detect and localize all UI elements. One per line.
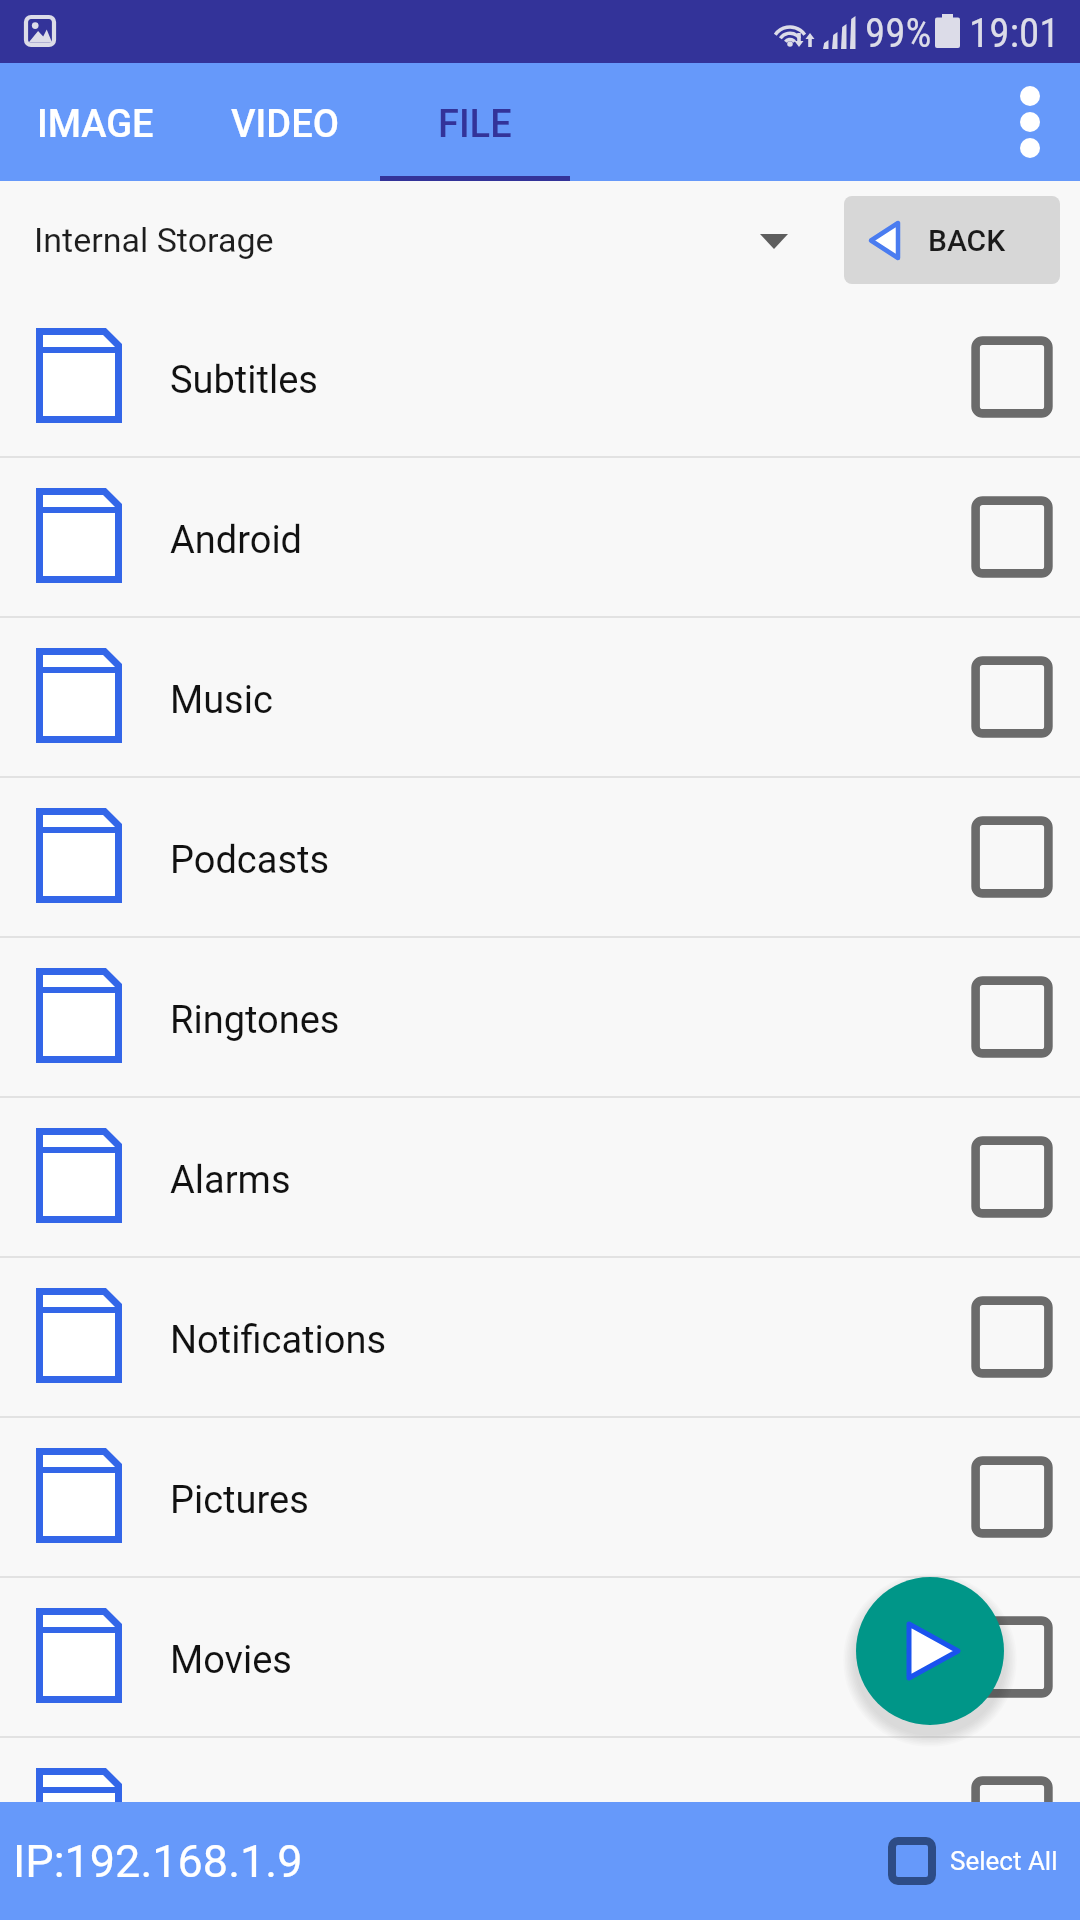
button[interactable]: Play <box>856 1577 1004 1725</box>
button[interactable]: Podcasts <box>0 778 1080 936</box>
staticText: Internal Storage <box>34 220 274 260</box>
button[interactable]: Subtitles <box>0 298 1080 456</box>
staticText: Music <box>170 678 273 723</box>
staticText: FILE <box>438 102 512 147</box>
staticText: IMAGE <box>37 102 154 147</box>
button[interactable]: Select Music <box>957 642 1067 752</box>
button[interactable]: Ringtones <box>0 938 1080 1096</box>
button[interactable]: Select Notifications <box>957 1282 1067 1392</box>
staticText: Android <box>170 518 303 563</box>
staticText: Download <box>170 1798 340 1843</box>
button[interactable]: Alarms <box>0 1098 1080 1256</box>
staticText: 99% <box>865 9 932 57</box>
button[interactable]: Select Download <box>957 1762 1067 1872</box>
button[interactable]: Internal Storage <box>0 181 1080 298</box>
button[interactable]: Android <box>0 458 1080 616</box>
staticText: Movies <box>170 1638 292 1683</box>
button[interactable]: VIDEO <box>190 63 380 181</box>
button[interactable]: More options <box>980 63 1080 181</box>
button[interactable]: Music <box>0 618 1080 776</box>
button[interactable]: Download <box>0 1738 1080 1896</box>
button[interactable]: Movies <box>0 1578 1080 1736</box>
staticText: Pictures <box>170 1478 309 1523</box>
staticText: Select All <box>950 1846 1058 1876</box>
button[interactable]: Select Ringtones <box>957 962 1067 1072</box>
button[interactable]: Select Pictures <box>957 1442 1067 1552</box>
button[interactable]: FILE <box>380 63 570 181</box>
staticText: Subtitles <box>170 358 318 403</box>
staticText: Notifications <box>170 1318 387 1363</box>
staticText: 19:01 <box>969 9 1060 57</box>
button[interactable]: IMAGE <box>0 63 190 181</box>
staticText: Ringtones <box>170 998 340 1043</box>
staticText: VIDEO <box>231 102 339 147</box>
staticText: BACK <box>928 223 1006 258</box>
button[interactable]: Notifications <box>0 1258 1080 1416</box>
staticText: IP:192.168.1.9 <box>13 1835 303 1888</box>
button[interactable]: BACK <box>844 196 1060 284</box>
staticText: Podcasts <box>170 838 330 883</box>
button[interactable]: Pictures <box>0 1418 1080 1576</box>
button[interactable]: Select Android <box>957 482 1067 592</box>
button[interactable]: Select Podcasts <box>957 802 1067 912</box>
button[interactable]: Select Alarms <box>957 1122 1067 1232</box>
staticText: Alarms <box>170 1158 291 1203</box>
button[interactable]: Select Movies <box>957 1602 1067 1712</box>
button[interactable]: Select All <box>888 1837 1058 1885</box>
button[interactable]: Select Subtitles <box>957 322 1067 432</box>
